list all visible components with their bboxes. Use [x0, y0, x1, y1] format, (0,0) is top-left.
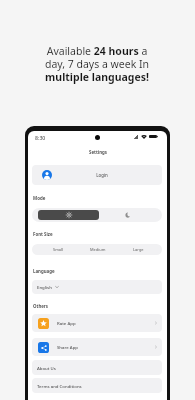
staticText: Login — [52, 172, 152, 178]
button[interactable]: Large — [118, 244, 158, 255]
staticText: Language — [33, 268, 55, 274]
staticText: Mode — [33, 195, 46, 201]
button[interactable]: Medium — [78, 244, 118, 255]
button[interactable]: Login — [32, 165, 162, 185]
button[interactable]: Terms and Conditions — [32, 378, 162, 393]
button[interactable]: Small — [39, 244, 78, 255]
staticText: 8:30 — [35, 134, 46, 141]
button[interactable]: Light mode — [38, 210, 99, 220]
staticText: Font Size — [33, 231, 53, 237]
button[interactable]: Rate App — [32, 314, 162, 332]
staticText: About Us — [37, 365, 56, 371]
staticText: Rate App — [57, 320, 76, 326]
button[interactable]: Dark mode — [99, 210, 161, 220]
staticText: Small — [53, 247, 64, 252]
staticText: Available 24 hours a day, 7 days a week … — [44, 44, 150, 84]
staticText: Large — [133, 247, 144, 252]
button[interactable]: Share App — [32, 338, 162, 356]
staticText: English — [37, 284, 52, 290]
button[interactable]: About Us — [32, 360, 162, 375]
staticText: Medium — [90, 247, 106, 252]
staticText: Share App — [57, 344, 78, 350]
staticText: Terms and Conditions — [37, 383, 82, 389]
button[interactable]: English — [32, 280, 162, 294]
staticText: Settings — [89, 149, 107, 155]
staticText: Others — [33, 303, 49, 309]
